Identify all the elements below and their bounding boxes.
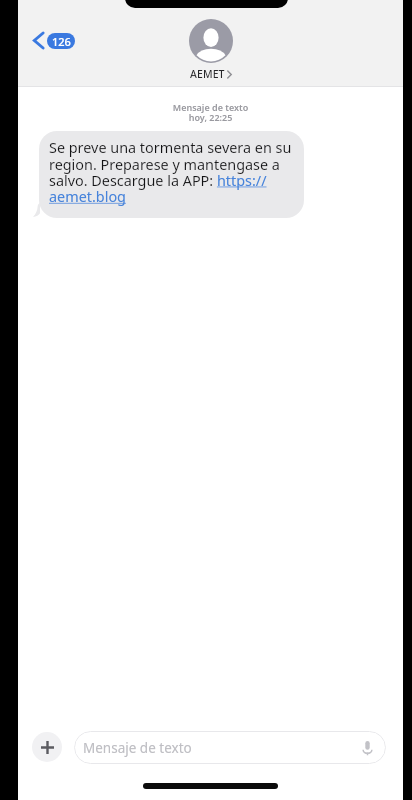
button[interactable]: Back, 126 unread [33,32,75,49]
button[interactable]: Record voice message [357,738,377,758]
button[interactable]: Add attachment [32,732,62,762]
button[interactable]: AEMET [189,19,233,81]
staticText: hoy, 22:25 [18,111,403,123]
staticText: 126 [52,34,71,49]
button[interactable]: Se preve una tormenta severa en su regio… [39,131,304,218]
button[interactable]: Mensaje de texto [74,731,386,764]
staticText: Mensaje de texto [83,739,192,757]
staticText: Mensaje de texto [18,101,403,113]
staticText: AEMET [190,67,225,81]
staticText: Se preve una tormenta severa en su regio… [49,138,294,206]
